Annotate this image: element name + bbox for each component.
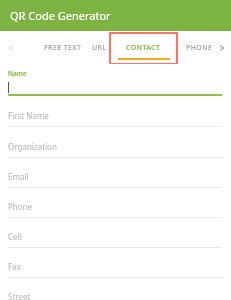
button[interactable]: Name xyxy=(8,64,222,96)
staticText: Organization xyxy=(8,141,57,152)
staticText: Name xyxy=(8,69,27,78)
staticText: FREE TEXT xyxy=(44,43,82,53)
button[interactable]: PHONE xyxy=(180,31,218,64)
staticText: Phone xyxy=(8,201,33,212)
button[interactable]: FREE TEXT xyxy=(26,31,100,64)
button[interactable]: CONTACT xyxy=(110,33,177,64)
staticText: Email xyxy=(8,171,29,182)
button[interactable]: Email xyxy=(8,158,222,188)
staticText: QR Code Generator xyxy=(10,8,111,23)
staticText: PHONE xyxy=(186,43,213,53)
staticText: CONTACT xyxy=(126,43,161,53)
button[interactable]: Fax xyxy=(8,248,222,278)
staticText: Street xyxy=(8,291,31,300)
button[interactable]: Street xyxy=(8,278,222,300)
button[interactable]: Organization xyxy=(8,127,222,158)
button[interactable]: Cell xyxy=(8,218,222,248)
button[interactable]: First Name xyxy=(8,96,222,127)
staticText: Fax xyxy=(8,261,21,272)
staticText: URL xyxy=(92,43,107,53)
button[interactable]: URL xyxy=(82,31,116,64)
button[interactable]: Scroll tabs right xyxy=(213,31,231,64)
button[interactable]: Phone xyxy=(8,188,222,218)
staticText: Cell xyxy=(8,231,22,242)
staticText: First Name xyxy=(8,110,49,121)
